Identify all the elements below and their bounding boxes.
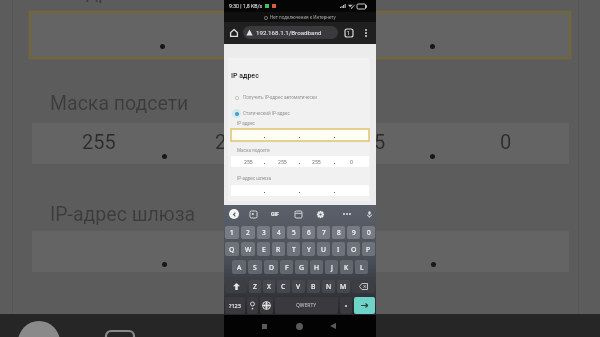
- staticText: I: [337, 245, 340, 254]
- staticText: 6: [307, 228, 311, 237]
- staticText: Маска подсети: [50, 92, 189, 115]
- button[interactable]: V: [292, 280, 305, 293]
- staticText: 8: [337, 228, 341, 237]
- button[interactable]: H: [310, 260, 323, 274]
- button[interactable]: Home: [227, 26, 240, 39]
- staticText: 0: [500, 130, 512, 153]
- staticText: IP адрес: [52, 0, 131, 3]
- staticText: L: [360, 263, 364, 272]
- button[interactable]: sticker: [247, 208, 259, 220]
- button[interactable]: E: [257, 242, 270, 256]
- button[interactable]: GIF: [269, 209, 281, 218]
- staticText: Маска подсети: [237, 148, 270, 153]
- button[interactable]: W: [241, 242, 255, 256]
- button[interactable]: 6: [302, 226, 315, 239]
- staticText: 9: [352, 228, 356, 237]
- staticText: R: [276, 245, 281, 254]
- button[interactable]: 9: [347, 226, 360, 239]
- staticText: S: [253, 263, 257, 272]
- button[interactable]: Period: [340, 297, 352, 314]
- button[interactable]: Back: [229, 209, 239, 219]
- button[interactable]: 2: [241, 226, 255, 239]
- staticText: IP адрес: [231, 72, 259, 80]
- staticText: IP адрес: [237, 121, 255, 126]
- button[interactable]: Y: [302, 242, 315, 256]
- button[interactable]: settings: [314, 208, 326, 220]
- button[interactable]: F: [280, 260, 293, 274]
- button[interactable]: 8: [332, 226, 345, 239]
- button[interactable]: 3: [257, 226, 270, 239]
- button[interactable]: Language: [260, 297, 273, 314]
- staticText: E: [262, 245, 266, 254]
- staticText: V: [296, 282, 301, 291]
- staticText: 5: [374, 130, 386, 153]
- staticText: QWERTY: [296, 302, 317, 309]
- button[interactable]: P: [362, 242, 375, 256]
- staticText: 2: [215, 130, 227, 153]
- button[interactable]: Backspace: [352, 280, 375, 293]
- staticText: Z: [253, 282, 257, 291]
- button[interactable]: M: [337, 280, 350, 293]
- button[interactable]: more: [341, 208, 353, 220]
- button[interactable]: ?123: [225, 297, 245, 314]
- staticText: H: [314, 263, 320, 272]
- button[interactable]: X: [263, 280, 275, 293]
- staticText: P: [366, 245, 371, 254]
- button[interactable]: S: [248, 260, 262, 274]
- button[interactable]: [231, 129, 369, 141]
- staticText: 192.168.1.1/Broadband: [256, 29, 322, 36]
- button[interactable]: C: [277, 280, 290, 293]
- button[interactable]: D: [264, 260, 278, 274]
- staticText: 3: [262, 228, 266, 237]
- staticText: IP-адрес шлюза: [50, 203, 196, 226]
- button[interactable]: Shift: [225, 280, 247, 293]
- button[interactable]: clipboard: [292, 208, 304, 220]
- staticText: 1: [347, 30, 350, 36]
- button[interactable]: N: [322, 280, 335, 293]
- button[interactable]: L: [355, 260, 368, 274]
- staticText: N: [326, 282, 332, 291]
- button[interactable]: Space: [275, 297, 338, 314]
- button[interactable]: Recents: [256, 318, 272, 334]
- button[interactable]: mic: [363, 208, 375, 220]
- button[interactable]: A: [232, 260, 246, 274]
- staticText: W: [245, 245, 252, 254]
- staticText: Нет подключения к Интернету: [270, 15, 336, 20]
- button[interactable]: Получить IP-адрес автоматически: [228, 90, 370, 104]
- button[interactable]: 7: [317, 226, 330, 239]
- button[interactable]: [243, 26, 338, 39]
- button[interactable]: Q: [225, 242, 239, 256]
- button[interactable]: Enter: [354, 297, 375, 314]
- button[interactable]: U: [317, 242, 330, 256]
- button[interactable]: [231, 185, 369, 196]
- button[interactable]: Home: [291, 318, 307, 334]
- button[interactable]: Emoji: [247, 297, 258, 314]
- button[interactable]: Статический IP-адрес: [228, 106, 370, 120]
- button[interactable]: 0: [362, 226, 375, 239]
- button[interactable]: B: [307, 280, 320, 293]
- staticText: 0: [367, 228, 371, 237]
- button[interactable]: R: [272, 242, 285, 256]
- staticText: K: [344, 263, 349, 272]
- button[interactable]: More options: [359, 26, 372, 39]
- button[interactable]: I: [332, 242, 345, 256]
- staticText: U: [321, 245, 326, 254]
- button[interactable]: O: [347, 242, 360, 256]
- staticText: 255: [244, 159, 253, 165]
- button[interactable]: J: [325, 260, 338, 274]
- button[interactable]: 255: [231, 156, 369, 167]
- button[interactable]: G: [295, 260, 308, 274]
- staticText: 9:30 | 1,8 KB/s: [229, 3, 263, 9]
- button[interactable]: K: [340, 260, 353, 274]
- button[interactable]: Tabs: [342, 26, 355, 39]
- staticText: F: [285, 263, 289, 272]
- staticText: 0: [350, 159, 353, 165]
- button[interactable]: 5: [287, 226, 300, 239]
- button[interactable]: Z: [249, 280, 261, 293]
- button[interactable]: Back: [325, 318, 341, 334]
- button[interactable]: 4: [272, 226, 285, 239]
- staticText: O: [351, 245, 357, 254]
- button[interactable]: 1: [225, 226, 239, 239]
- button[interactable]: T: [287, 242, 300, 256]
- staticText: C: [281, 282, 286, 291]
